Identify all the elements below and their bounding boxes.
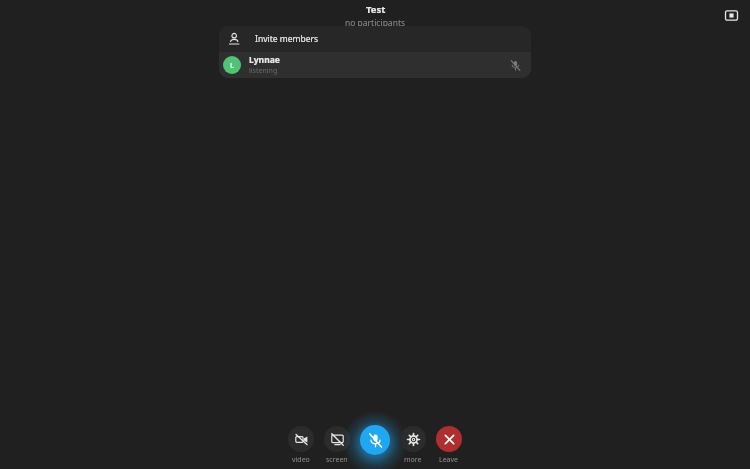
staticText: more [404, 455, 422, 465]
staticText: Test [366, 3, 386, 16]
button[interactable]: Turn camera on [284, 426, 318, 465]
staticText: Lynnae [249, 54, 280, 66]
staticText: video [292, 455, 310, 465]
staticText: Invite members [255, 33, 319, 45]
button[interactable]: Unmute microphone [360, 425, 390, 455]
staticText: listening [249, 66, 278, 76]
button[interactable]: L [219, 52, 531, 78]
button[interactable]: Participant muted [507, 57, 523, 73]
staticText: Leave [439, 455, 459, 465]
button[interactable]: More options [396, 426, 430, 465]
button[interactable]: Leave call [432, 426, 466, 465]
staticText: screen [326, 455, 348, 465]
button[interactable]: Change layout [721, 5, 741, 25]
button[interactable]: Invite members [219, 26, 531, 52]
staticText: L [230, 60, 235, 70]
button[interactable]: Share screen [320, 426, 354, 465]
staticText: no participants [345, 17, 406, 29]
